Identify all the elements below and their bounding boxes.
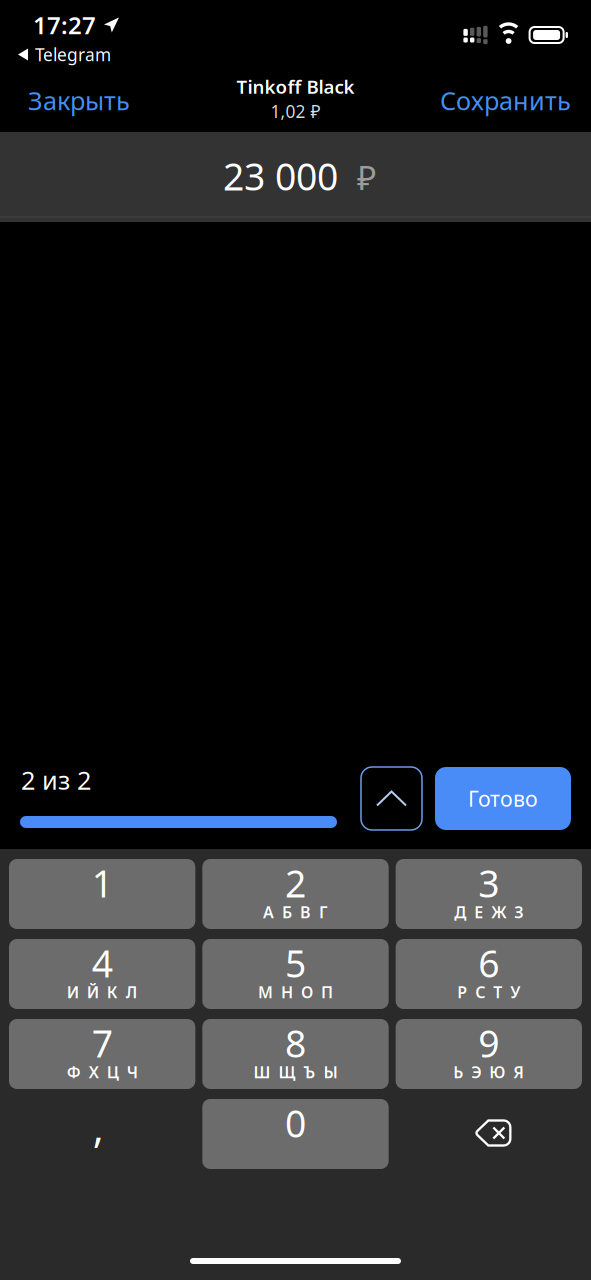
staticText: 3 [478, 858, 499, 908]
button[interactable]: 0 [202, 1099, 389, 1169]
button[interactable]: Предыдущее поле [361, 767, 422, 830]
button[interactable]: 3 [396, 859, 582, 929]
staticText: Ш Щ Ъ Ы [253, 1061, 337, 1083]
staticText: , [93, 1100, 104, 1154]
staticText: И Й К Л [67, 981, 138, 1003]
staticText: 0 [285, 1098, 306, 1148]
button[interactable]: 1 [9, 859, 195, 929]
staticText: 7 [92, 1018, 113, 1068]
staticText: Д Е Ж З [454, 901, 523, 923]
button[interactable]: 4 [9, 939, 195, 1009]
staticText: 17:27 [33, 9, 96, 41]
staticText: Telegram [35, 43, 111, 66]
staticText: Tinkoff Black [236, 74, 354, 99]
staticText: Закрыть [28, 84, 130, 117]
staticText: ₽ [357, 155, 376, 199]
button[interactable]: 2 [202, 859, 389, 929]
staticText: 5 [285, 938, 306, 988]
staticText: 1,02 ₽ [270, 100, 320, 123]
staticText: 6 [478, 938, 499, 988]
staticText: Ф Х Ц Ч [67, 1061, 138, 1083]
staticText: 4 [92, 938, 113, 988]
staticText: 8 [285, 1018, 306, 1068]
button[interactable]: Готово [435, 767, 571, 830]
button[interactable]: 5 [202, 939, 389, 1009]
button[interactable]: Запятая [9, 1099, 195, 1169]
button[interactable]: 6 [396, 939, 582, 1009]
button[interactable]: Закрыть [14, 78, 144, 129]
button[interactable]: 7 [9, 1019, 195, 1089]
staticText: 23 000 [223, 151, 338, 201]
button[interactable]: 9 [396, 1019, 582, 1089]
staticText: Р С Т У [457, 981, 520, 1003]
staticText: 9 [478, 1018, 499, 1068]
staticText: 1 [92, 858, 113, 908]
button[interactable]: 8 [202, 1019, 389, 1089]
staticText: Ь Э Ю Я [453, 1061, 524, 1083]
staticText: А Б В Г [263, 901, 328, 923]
button[interactable]: Удалить [396, 1099, 582, 1169]
staticText: Готово [468, 784, 538, 813]
staticText: 2 [285, 858, 306, 908]
button[interactable]: Сохранить [426, 78, 577, 129]
staticText: 2 из 2 [21, 763, 91, 797]
staticText: Сохранить [440, 84, 571, 117]
staticText: М Н О П [258, 981, 333, 1003]
